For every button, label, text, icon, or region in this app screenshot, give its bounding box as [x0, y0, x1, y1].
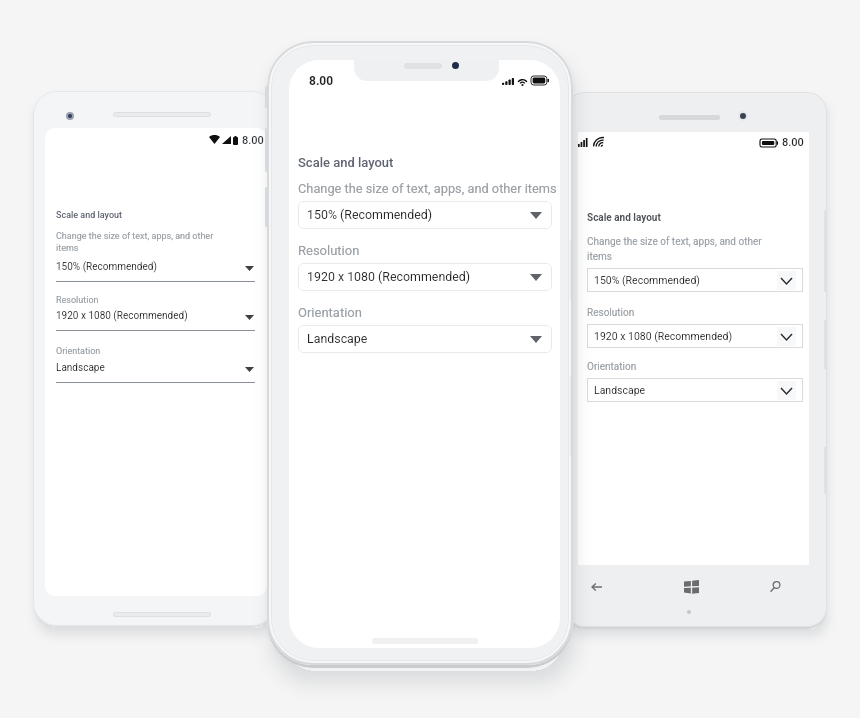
- button[interactable]: 150% (Recommended): [56, 261, 255, 282]
- staticText: Change the size of text, apps, and other…: [56, 231, 236, 253]
- staticText: Orientation: [587, 361, 637, 373]
- staticText: 150% (Recommended): [594, 274, 700, 286]
- button[interactable]: 150% (Recommended): [587, 268, 803, 292]
- staticText: Orientation: [298, 305, 362, 320]
- button[interactable]: Landscape: [298, 325, 552, 353]
- staticText: Orientation: [56, 346, 101, 357]
- staticText: Landscape: [307, 331, 368, 346]
- button[interactable]: Back: [574, 568, 618, 606]
- staticText: Scale and layout: [298, 155, 394, 170]
- staticText: 1920 x 1080 (Recommended): [56, 310, 188, 322]
- button[interactable]: 1920 x 1080 (Recommended): [587, 324, 803, 348]
- staticText: Change the size of text, apps, and other…: [587, 236, 789, 262]
- button[interactable]: 1920 x 1080 (Recommended): [298, 263, 552, 291]
- button[interactable]: Landscape: [587, 378, 803, 402]
- staticText: Resolution: [298, 243, 360, 258]
- staticText: 8.00: [782, 136, 804, 149]
- button[interactable]: Landscape: [56, 362, 255, 383]
- staticText: 8.00: [242, 134, 264, 146]
- staticText: 8.00: [309, 74, 334, 88]
- staticText: Scale and layout: [587, 212, 661, 224]
- button[interactable]: 150% (Recommended): [298, 201, 552, 229]
- staticText: Resolution: [56, 295, 99, 306]
- staticText: Scale and layout: [56, 210, 123, 221]
- staticText: Landscape: [56, 362, 105, 374]
- staticText: 1920 x 1080 (Recommended): [594, 330, 733, 342]
- staticText: Resolution: [587, 307, 635, 319]
- button[interactable]: Search: [753, 568, 797, 606]
- button[interactable]: 1920 x 1080 (Recommended): [56, 310, 255, 331]
- staticText: 150% (Recommended): [56, 261, 157, 273]
- staticText: Change the size of text, apps, and other…: [298, 181, 557, 196]
- staticText: 1920 x 1080 (Recommended): [307, 269, 471, 284]
- staticText: Landscape: [594, 384, 646, 396]
- staticText: 150% (Recommended): [307, 207, 433, 222]
- button[interactable]: Start: [669, 568, 713, 606]
